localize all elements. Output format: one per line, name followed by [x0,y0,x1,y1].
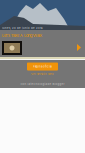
staticText: Con la tecnología de Blogger [20,82,64,86]
staticText: Ver versión web [31,72,54,76]
button[interactable]: Ver versión web [0,71,85,76]
staticText: Let's Take A Long Walk [2,33,42,38]
button[interactable]: Let's Take A Long Walk [2,33,62,38]
button[interactable]: Siguiente [76,43,82,52]
staticText: Página oficial [33,65,52,68]
button[interactable]: Página oficial [27,62,58,70]
staticText: lunes, 20 de junio de 2016 [2,26,43,30]
